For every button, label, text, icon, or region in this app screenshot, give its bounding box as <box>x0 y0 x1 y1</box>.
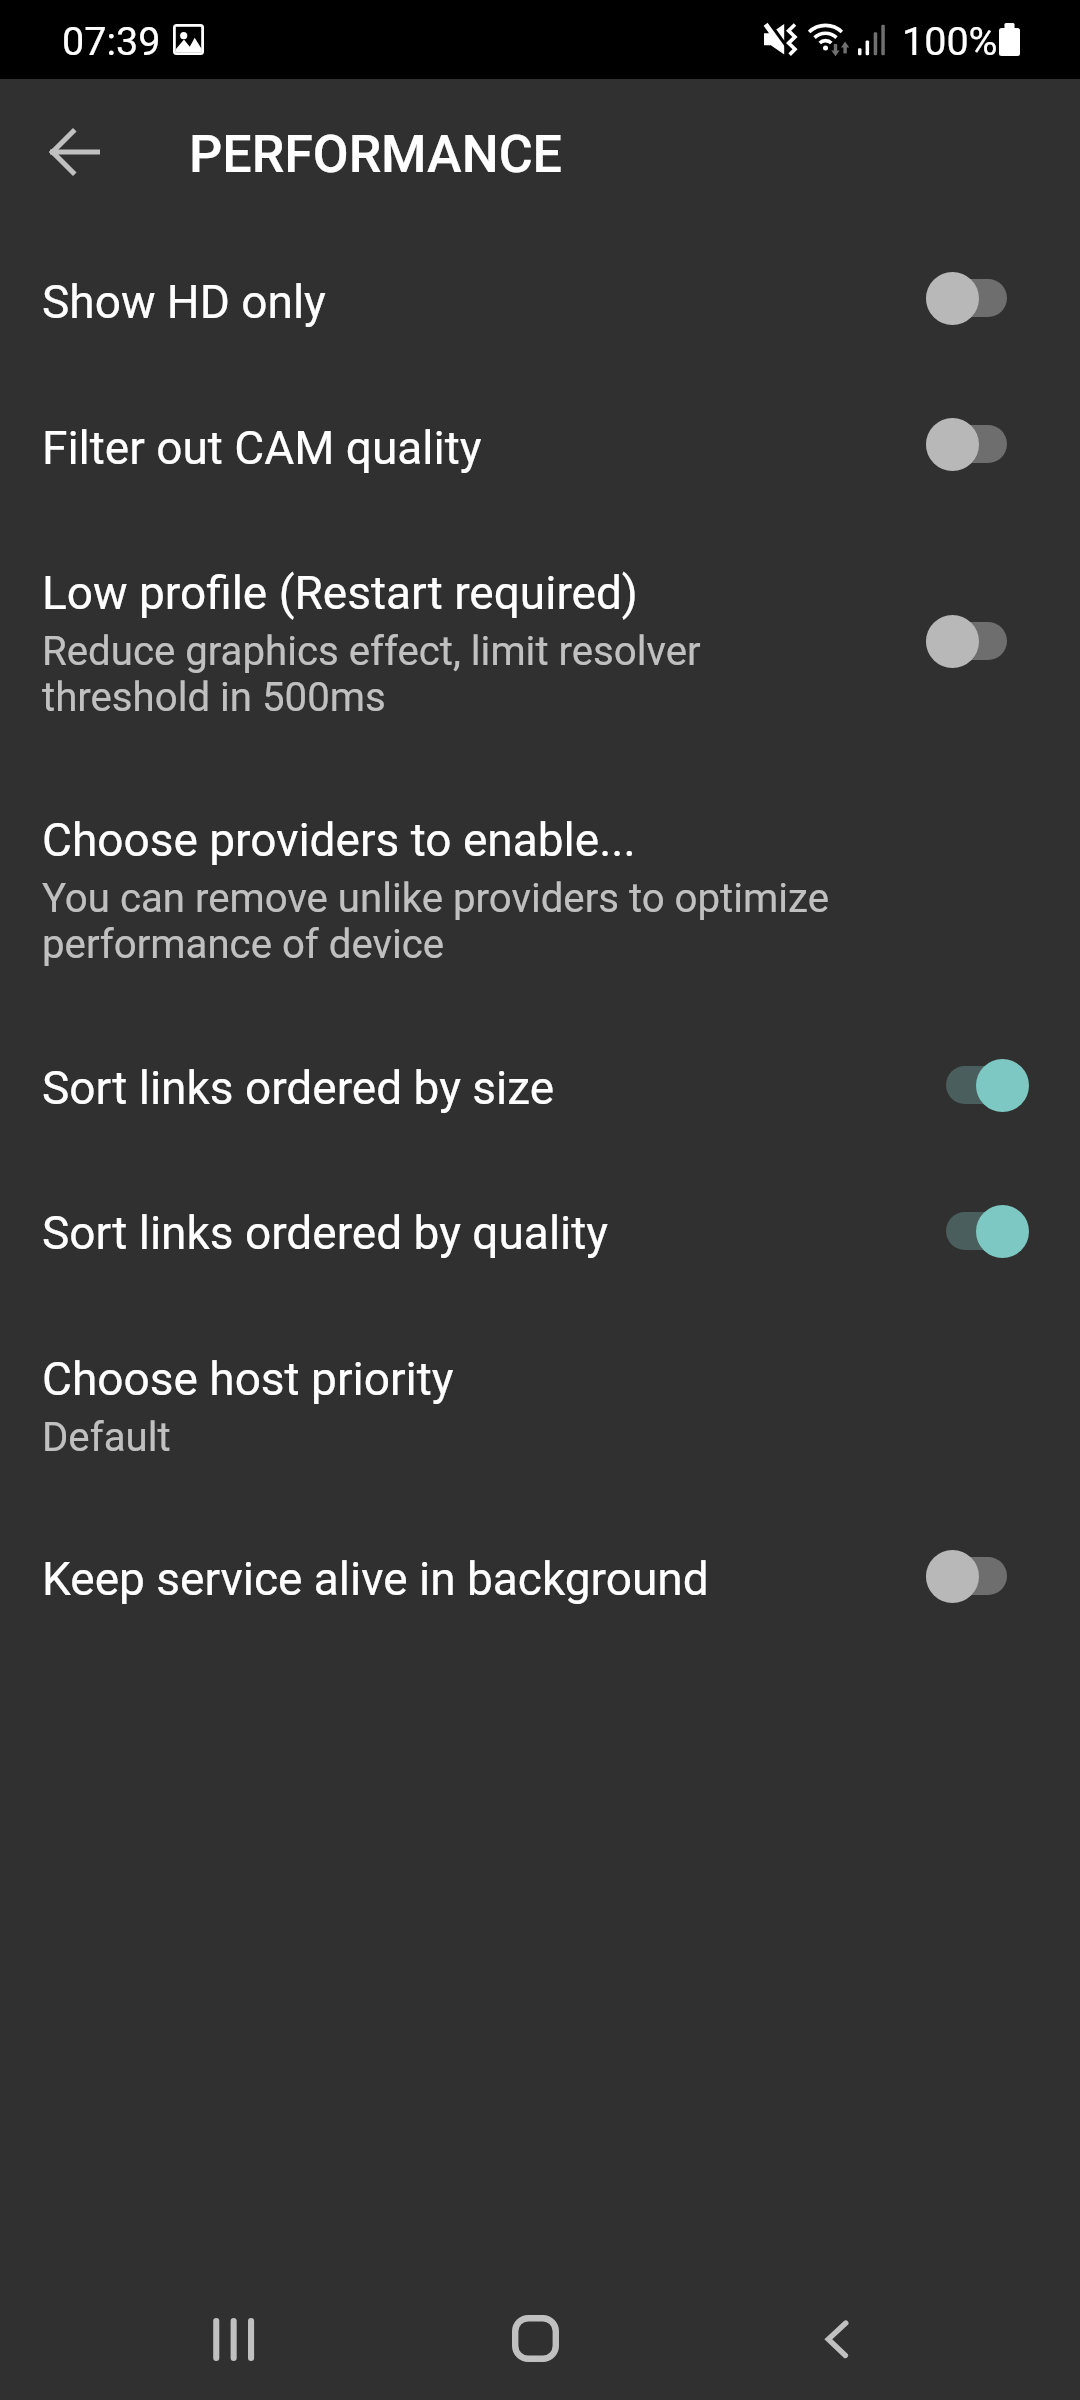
staticText: Default <box>42 1414 902 1461</box>
button[interactable]: Sort links ordered by size <box>946 1055 1027 1115</box>
staticText: 100% <box>902 18 1080 64</box>
staticText: Reduce graphics effect, limit resolver <box>42 628 902 675</box>
button[interactable]: Back <box>789 2291 885 2387</box>
button[interactable]: Keep service alive in background <box>926 1546 1007 1606</box>
staticText: performance of device <box>42 921 902 968</box>
staticText: Keep service alive in background <box>42 1552 902 1606</box>
staticText: 07:39 <box>62 18 962 64</box>
staticText: Low profile (Restart required) <box>42 566 902 620</box>
button[interactable]: Recent apps <box>185 2291 281 2387</box>
button[interactable] <box>0 403 1080 492</box>
button[interactable]: Show HD only <box>926 268 1007 328</box>
button[interactable] <box>0 548 1080 737</box>
staticText: You can remove unlike providers to optim… <box>42 875 902 922</box>
staticText: Show HD only <box>42 275 902 329</box>
staticText: Sort links ordered by quality <box>42 1206 902 1260</box>
button[interactable] <box>0 1534 1080 1623</box>
staticText: Filter out CAM quality <box>42 421 902 475</box>
button[interactable] <box>0 1188 1080 1277</box>
button[interactable] <box>0 795 1080 984</box>
button[interactable] <box>0 257 1080 346</box>
staticText: Choose host priority <box>42 1352 902 1406</box>
staticText: Choose providers to enable... <box>42 813 902 867</box>
staticText: PERFORMANCE <box>189 124 1080 185</box>
staticText: Sort links ordered by size <box>42 1061 902 1115</box>
staticText: threshold in 500ms <box>42 674 902 721</box>
button[interactable]: Home <box>487 2291 583 2387</box>
button[interactable]: Low profile (Restart required) <box>926 611 1007 671</box>
button[interactable]: Filter out CAM quality <box>926 414 1007 474</box>
button[interactable]: Sort links ordered by quality <box>946 1201 1027 1261</box>
button[interactable] <box>0 1043 1080 1132</box>
button[interactable]: Navigate up <box>26 104 122 200</box>
button[interactable] <box>0 1334 1080 1477</box>
